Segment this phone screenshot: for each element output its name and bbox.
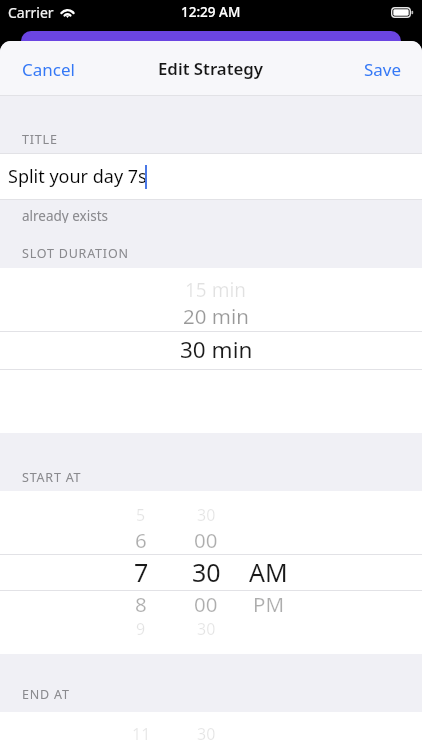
staticText: 15 min (185, 277, 247, 303)
staticText: END AT (22, 686, 70, 702)
staticText: AM (249, 555, 288, 587)
staticText: Save (364, 58, 402, 81)
staticText: 30 (197, 504, 216, 526)
staticText: SLOT DURATION (22, 245, 129, 261)
staticText: 30 (192, 555, 221, 587)
staticText: START AT (22, 469, 82, 485)
staticText: Edit Strategy (158, 57, 264, 80)
staticText: 12:29 AM (181, 3, 241, 21)
staticText: 11 (132, 723, 151, 745)
staticText: Split your day 7s (8, 164, 147, 189)
staticText: 8 (135, 590, 147, 618)
staticText: 30 (197, 723, 216, 745)
staticText: Cancel (22, 58, 75, 81)
staticText: 00 (194, 590, 218, 618)
staticText: 7 (134, 555, 149, 587)
button[interactable]: Cancel (18, 53, 79, 86)
staticText: 6 (135, 526, 147, 554)
staticText: 5 (136, 504, 146, 526)
staticText: 20 min (183, 302, 249, 330)
staticText: PM (253, 590, 284, 618)
button[interactable]: Save (360, 53, 406, 86)
staticText: Carrier (8, 3, 54, 22)
staticText: 9 (136, 618, 146, 640)
staticText: 30 (197, 618, 216, 640)
staticText: TITLE (22, 131, 58, 147)
staticText: already exists (22, 207, 109, 223)
staticText: 30 min (180, 334, 253, 365)
staticText: 00 (194, 526, 218, 554)
